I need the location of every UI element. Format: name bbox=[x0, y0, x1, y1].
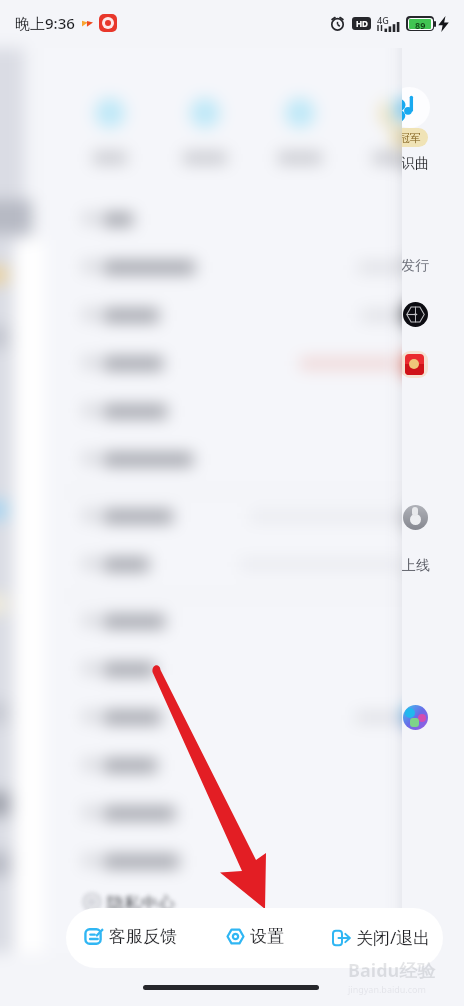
staticText: Baidu经验 bbox=[348, 958, 436, 983]
staticText: 晚上9:36 bbox=[15, 13, 75, 33]
staticText: 89 bbox=[415, 19, 426, 29]
staticText: 关闭/退出 bbox=[356, 926, 431, 949]
staticText: 冠军 bbox=[402, 131, 421, 145]
staticText: 设置 bbox=[250, 926, 284, 947]
staticText: 上线 bbox=[402, 557, 430, 575]
staticText: 4G bbox=[377, 14, 389, 26]
button[interactable]: 关闭/退出 bbox=[332, 926, 431, 949]
staticText: 隐私中心 bbox=[107, 893, 175, 914]
staticText: 发行 bbox=[402, 257, 429, 275]
staticText: jingyan.baidu.com bbox=[348, 983, 426, 995]
button[interactable]: 客服反馈 bbox=[84, 926, 177, 947]
staticText: 识曲 bbox=[402, 155, 429, 173]
staticText: 冠军 bbox=[399, 131, 421, 145]
staticText: 客服反馈 bbox=[109, 926, 177, 947]
staticText: 发行 bbox=[401, 257, 429, 275]
button[interactable]: 设置 bbox=[227, 926, 284, 947]
staticText: 上线 bbox=[402, 557, 430, 575]
staticText: 识曲 bbox=[401, 155, 429, 173]
staticText: HD bbox=[356, 18, 368, 29]
